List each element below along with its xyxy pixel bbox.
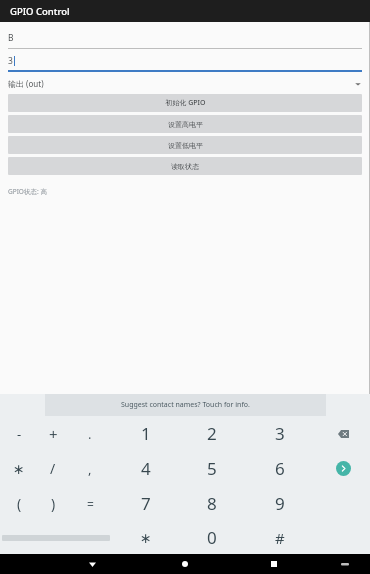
staticText: , xyxy=(88,460,92,478)
staticText: 5 xyxy=(207,457,217,480)
button[interactable]: Switch keyboard xyxy=(330,554,360,574)
staticText: 7 xyxy=(141,492,151,515)
staticText: ∗ xyxy=(13,461,25,477)
button[interactable]: ∗ xyxy=(129,521,163,554)
button[interactable]: + xyxy=(36,416,70,451)
button[interactable]: B xyxy=(8,32,362,49)
button[interactable]: ) xyxy=(36,486,70,521)
button[interactable]: 7 xyxy=(129,486,163,521)
staticText: . xyxy=(88,425,92,443)
button[interactable]: - xyxy=(2,416,36,451)
staticText: 初始化 GPIO xyxy=(165,98,206,108)
button[interactable]: 设置高电平 xyxy=(8,115,362,133)
button[interactable]: Backspace xyxy=(326,416,360,451)
staticText: 4 xyxy=(141,457,151,480)
button[interactable]: 初始化 GPIO xyxy=(8,94,362,112)
staticText: = xyxy=(87,496,94,512)
button[interactable]: ( xyxy=(2,486,36,521)
staticText: 输出 (out) xyxy=(8,78,354,89)
staticText: GPIO状态: 高 xyxy=(8,187,47,196)
staticText: 3 xyxy=(8,55,13,67)
staticText: 1 xyxy=(141,422,151,445)
staticText: B xyxy=(8,32,14,44)
staticText: 2 xyxy=(207,422,217,445)
button[interactable]: 0 xyxy=(195,521,229,554)
button[interactable]: Home xyxy=(165,554,205,574)
button[interactable]: 1 xyxy=(129,416,163,451)
staticText: 设置低电平 xyxy=(168,141,203,150)
staticText: ∗ xyxy=(140,530,152,546)
button[interactable]: . xyxy=(73,416,107,451)
button[interactable]: Hide keyboard xyxy=(72,554,112,574)
button[interactable]: / xyxy=(36,451,70,486)
button[interactable]: 输出 (out) xyxy=(8,78,362,89)
button[interactable]: Space xyxy=(2,521,110,554)
button[interactable]: 8 xyxy=(195,486,229,521)
staticText: 读取状态 xyxy=(171,162,199,171)
staticText: GPIO Control xyxy=(10,5,70,18)
button[interactable]: # xyxy=(263,521,297,554)
staticText: 8 xyxy=(207,492,217,515)
staticText: ( xyxy=(17,494,22,513)
staticText: ) xyxy=(51,494,56,513)
staticText: 9 xyxy=(275,492,285,515)
button[interactable]: 6 xyxy=(263,451,297,486)
staticText: # xyxy=(275,528,285,548)
button[interactable]: 3 xyxy=(263,416,297,451)
button[interactable]: 5 xyxy=(195,451,229,486)
staticText: / xyxy=(50,459,56,478)
staticText: Suggest contact names? Touch for info. xyxy=(121,400,250,410)
staticText: 6 xyxy=(275,457,285,480)
staticText: + xyxy=(49,424,58,444)
button[interactable]: 9 xyxy=(263,486,297,521)
button[interactable]: Suggest contact names? Touch for info. xyxy=(45,394,326,416)
button[interactable]: Recent apps xyxy=(254,554,294,574)
button[interactable]: 4 xyxy=(129,451,163,486)
button[interactable]: , xyxy=(73,451,107,486)
button[interactable]: Enter xyxy=(326,451,360,486)
button[interactable]: = xyxy=(73,486,107,521)
button[interactable]: 设置低电平 xyxy=(8,136,362,154)
button[interactable]: 2 xyxy=(195,416,229,451)
staticText: 3 xyxy=(275,422,285,445)
button[interactable]: 3 xyxy=(8,55,362,72)
staticText: 设置高电平 xyxy=(168,120,203,129)
staticText: - xyxy=(17,425,22,443)
button[interactable]: 读取状态 xyxy=(8,157,362,175)
staticText: 0 xyxy=(207,526,217,549)
button[interactable]: ∗ xyxy=(2,451,36,486)
